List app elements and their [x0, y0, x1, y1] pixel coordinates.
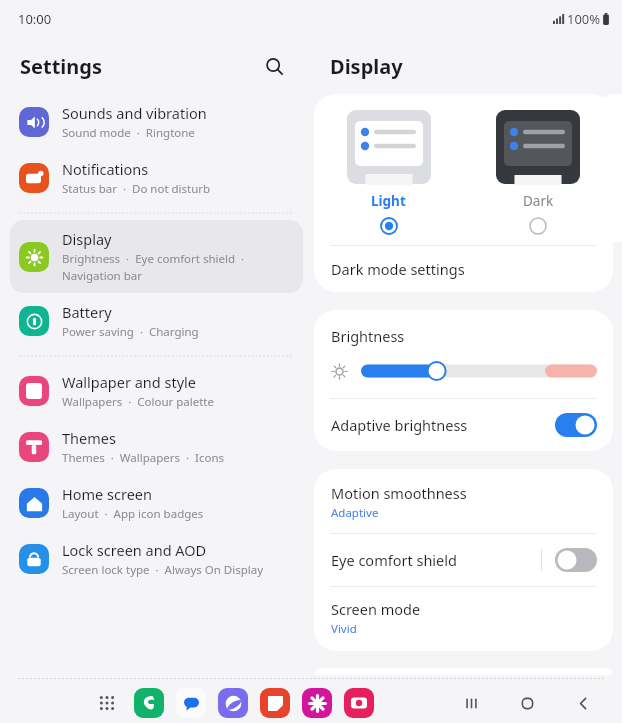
button[interactable]: Adaptive brightness	[314, 399, 613, 451]
button[interactable]: Dark	[463, 108, 613, 237]
button[interactable]: Sounds and vibration	[10, 94, 303, 150]
staticText: Settings	[20, 53, 102, 80]
staticText: Sounds and vibration	[62, 103, 207, 123]
button[interactable]: Dark mode settings	[314, 246, 613, 292]
button[interactable]: Display	[10, 220, 303, 293]
button[interactable]: Apps	[92, 688, 122, 718]
button[interactable]: On	[555, 413, 597, 437]
staticText: Battery	[62, 302, 112, 322]
button[interactable]: App	[176, 688, 206, 718]
button[interactable]: Eye comfort shield	[314, 534, 613, 586]
staticText: Brightness · Eye comfort shield ·	[62, 251, 245, 267]
staticText: 10:00	[18, 10, 52, 28]
staticText: Vivid	[331, 621, 357, 637]
staticText: Wallpaper and style	[62, 372, 196, 392]
staticText: Display	[62, 229, 112, 249]
staticText: Status bar · Do not disturb	[62, 181, 211, 197]
staticText: Display	[330, 53, 403, 80]
staticText: Motion smoothness	[331, 483, 467, 503]
button[interactable]: Wallpaper and style	[10, 363, 303, 419]
button[interactable]: Recents	[456, 688, 486, 718]
staticText: Navigation bar	[62, 268, 142, 284]
button[interactable]: Home	[512, 688, 542, 718]
staticText: Themes	[62, 428, 116, 448]
staticText: Wallpapers · Colour palette	[62, 394, 214, 410]
button[interactable]: App	[302, 688, 332, 718]
staticText: Layout · App icon badges	[62, 506, 204, 522]
button[interactable]: Search	[257, 49, 291, 83]
staticText: Notifications	[62, 159, 149, 179]
staticText: Screen mode	[331, 599, 421, 619]
staticText: Brightness	[331, 326, 405, 346]
button[interactable]: Themes	[10, 419, 303, 475]
staticText: Power saving · Charging	[62, 324, 199, 340]
button[interactable]: App	[134, 688, 164, 718]
staticText: Sound mode · Ringtone	[62, 125, 195, 141]
staticText: Home screen	[62, 484, 152, 504]
staticText: Dark mode settings	[331, 259, 465, 279]
staticText: Eye comfort shield	[331, 550, 541, 570]
button[interactable]: Battery	[10, 293, 303, 349]
staticText: Themes · Wallpapers · Icons	[62, 450, 224, 466]
staticText: Dark	[523, 192, 554, 210]
button[interactable]: Home screen	[10, 475, 303, 531]
button[interactable]: App	[260, 688, 290, 718]
staticText: Adaptive	[331, 505, 379, 521]
button[interactable]: Motion smoothness	[314, 469, 613, 533]
button[interactable]: Light	[314, 108, 463, 237]
button[interactable]: App	[344, 688, 374, 718]
button[interactable]: Notifications	[10, 150, 303, 206]
staticText: 100%	[567, 10, 601, 28]
staticText: Light	[371, 192, 406, 210]
button[interactable]: App	[218, 688, 248, 718]
button[interactable]: Lock screen and AOD	[10, 531, 303, 587]
button[interactable]: Back	[568, 688, 598, 718]
button[interactable]: Screen mode	[314, 587, 613, 651]
staticText: Adaptive brightness	[331, 415, 555, 435]
staticText: Lock screen and AOD	[62, 540, 207, 560]
staticText: Screen lock type · Always On Display	[62, 562, 264, 578]
button[interactable]: Off	[555, 548, 597, 572]
